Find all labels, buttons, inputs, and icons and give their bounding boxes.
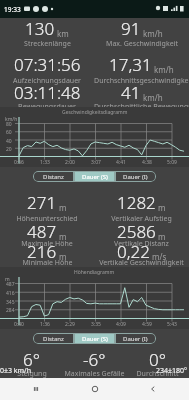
button[interactable]: 03:11:48 (0, 18, 94, 107)
staticText: Durchschnittliche Bewegungsgeschw. (94, 102, 189, 112)
button[interactable]: Home (72, 378, 118, 400)
staticText: 1:36 (40, 321, 50, 328)
button[interactable]: Dauer (S) (74, 333, 115, 344)
button[interactable]: 1282 (94, 186, 189, 267)
button[interactable]: 91 (94, 18, 189, 107)
button[interactable]: -6° (63, 347, 126, 378)
staticText: 07:31:56 (14, 53, 81, 76)
staticText: km (57, 28, 69, 39)
button[interactable]: 271 (0, 186, 94, 267)
staticText: 0:56 (14, 159, 24, 166)
button[interactable]: Distanz (33, 171, 74, 182)
staticText: m (158, 202, 166, 213)
staticText: Distanz (43, 173, 64, 181)
button[interactable]: 0° (126, 347, 189, 378)
staticText: 234±180° (156, 366, 188, 376)
staticText: 0,22 (117, 240, 150, 263)
staticText: Maximale Höhe (21, 239, 73, 249)
staticText: 19:33 (4, 5, 21, 14)
staticText: 3:35 (91, 321, 101, 328)
staticText: 4:09 (116, 321, 126, 328)
staticText: 6° (23, 348, 40, 371)
button[interactable]: 487 (0, 186, 94, 267)
staticText: Durchschnitt (136, 369, 179, 379)
staticText: Vertikale Distanz (114, 239, 169, 249)
staticText: km/h (143, 92, 163, 103)
button[interactable]: 216 (0, 186, 94, 267)
button[interactable]: Dauer (S) (74, 171, 115, 182)
staticText: 0±3 km/h (0, 366, 32, 376)
staticText: km/h (5, 116, 18, 123)
staticText: 4:38 (142, 159, 152, 166)
button[interactable]: Back (130, 378, 176, 400)
staticText: m (59, 231, 67, 242)
staticText: 40 (6, 138, 12, 145)
staticText: 5:43 (167, 321, 177, 328)
staticText: 284 (6, 307, 15, 314)
staticText: Distanz (43, 335, 64, 343)
staticText: Steigung (17, 369, 47, 379)
staticText: 2:00 (65, 159, 75, 166)
staticText: Geschwindigkeitsdiagramm (62, 109, 128, 116)
button[interactable]: 07:31:56 (0, 18, 94, 107)
staticText: m (158, 231, 166, 242)
staticText: -6° (83, 348, 106, 371)
staticText: Dauer (S) (82, 173, 108, 181)
staticText: 3:07 (91, 159, 101, 166)
staticText: 416 (6, 290, 15, 297)
staticText: Dauer (I) (123, 173, 148, 181)
staticText: 2586 (117, 220, 156, 243)
staticText: km/h (154, 64, 174, 75)
staticText: m/s (152, 251, 167, 262)
staticText: Minimale Höhe (22, 258, 73, 268)
staticText: 4:59 (142, 321, 152, 328)
staticText: 80 (6, 121, 12, 128)
staticText: 0:40 (14, 321, 24, 328)
staticText: 130 (25, 17, 55, 40)
staticText: Streckenlänge (24, 39, 71, 49)
staticText: 41 (121, 81, 141, 104)
button[interactable]: Recent apps (13, 378, 59, 400)
button[interactable]: 6° (0, 347, 63, 378)
staticText: m (59, 202, 67, 213)
button[interactable]: Distanz (33, 333, 74, 344)
button[interactable]: 2586 (94, 186, 189, 267)
staticText: 5:09 (167, 159, 177, 166)
staticText: m (5, 276, 10, 283)
staticText: 03:11:48 (14, 81, 81, 104)
staticText: 60 (6, 129, 12, 136)
staticText: Vertikale Geschwindigkeit (99, 258, 184, 268)
staticText: 0° (149, 348, 166, 371)
staticText: 20 (6, 146, 12, 153)
button[interactable]: 0,22 (94, 186, 189, 267)
staticText: Dauer (I) (123, 335, 148, 343)
button[interactable]: 41 (94, 18, 189, 107)
staticText: 345 (6, 299, 15, 306)
staticText: m (59, 251, 67, 262)
staticText: 271 (27, 191, 57, 214)
button[interactable]: 17,31 (94, 18, 189, 107)
button[interactable]: Dauer (I) (115, 333, 156, 344)
staticText: 1:33 (40, 159, 50, 166)
staticText: Aufzeichnungsdauer (13, 76, 81, 86)
staticText: 2:29 (65, 321, 75, 328)
staticText: 487 (6, 281, 15, 288)
staticText: Max. Geschwindigkeit (106, 39, 178, 49)
staticText: km/h (143, 28, 163, 39)
staticText: 17,31 (109, 53, 152, 76)
staticText: Dauer (S) (82, 335, 108, 343)
staticText: 4:41 (116, 159, 126, 166)
staticText: Bewegungsdauer (18, 102, 76, 112)
staticText: 1282 (117, 191, 156, 214)
staticText: 216 (27, 240, 57, 263)
button[interactable]: Dauer (I) (115, 171, 156, 182)
staticText: Maximales Gefälle (64, 369, 125, 379)
button[interactable]: 130 (0, 18, 94, 107)
staticText: Vertikaler Aufstieg (111, 214, 172, 224)
staticText: Höhendiagramm (74, 269, 115, 276)
staticText: Höhenunterschied (16, 214, 78, 224)
staticText: 91 (121, 17, 141, 40)
staticText: 487 (27, 220, 57, 243)
staticText: Durchschnittsgeschwindigkeit (94, 76, 189, 86)
